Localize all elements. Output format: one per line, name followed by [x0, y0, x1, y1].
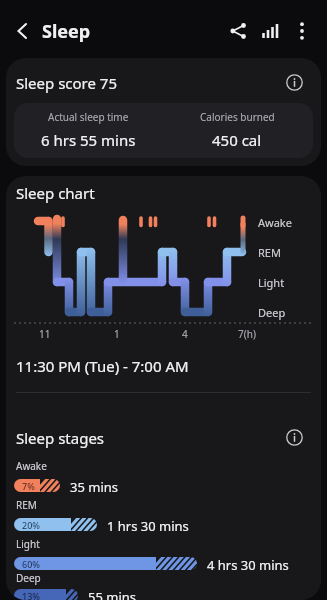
- button[interactable]: Sleep score 75: [6, 58, 321, 166]
- staticText: 20%: [22, 519, 40, 531]
- button[interactable]: 60%: [14, 557, 197, 570]
- staticText: 7%: [22, 480, 35, 492]
- staticText: Sleep stages: [16, 428, 105, 448]
- staticText: Calories burned: [200, 110, 275, 124]
- staticText: Light: [16, 537, 40, 551]
- staticText: 13%: [22, 590, 40, 600]
- staticText: 7(h): [238, 327, 256, 341]
- staticText: Sleep: [42, 19, 91, 44]
- button[interactable]: 7%: [14, 479, 60, 492]
- staticText: Sleep chart: [16, 183, 95, 203]
- button[interactable]: [282, 70, 306, 94]
- staticText: 4 hrs 30 mins: [207, 556, 289, 574]
- staticText: 4: [182, 327, 188, 341]
- staticText: Deep: [16, 571, 41, 585]
- staticText: 450 cal: [212, 130, 262, 150]
- button[interactable]: [256, 17, 284, 45]
- staticText: Awake: [258, 215, 292, 230]
- staticText: 55 mins: [88, 588, 137, 600]
- staticText: Sleep score 75: [16, 73, 118, 93]
- staticText: Actual sleep time: [48, 110, 129, 124]
- staticText: 6 hrs 55 mins: [41, 130, 136, 150]
- staticText: 1 hrs 30 mins: [107, 517, 189, 535]
- staticText: Awake: [16, 459, 47, 473]
- staticText: 11: [39, 327, 51, 341]
- button[interactable]: [289, 17, 315, 45]
- staticText: 1: [114, 327, 120, 341]
- staticText: Deep: [258, 305, 286, 320]
- button[interactable]: 13%: [14, 589, 78, 600]
- button[interactable]: [224, 17, 252, 45]
- staticText: 60%: [22, 558, 40, 570]
- staticText: REM: [16, 498, 37, 512]
- staticText: 11:30 PM (Tue) - 7:00 AM (Wed): [16, 356, 216, 379]
- button[interactable]: [282, 425, 306, 449]
- staticText: REM: [258, 245, 281, 260]
- button[interactable]: [6, 17, 40, 45]
- button[interactable]: 20%: [14, 518, 97, 531]
- staticText: Light: [258, 275, 285, 290]
- staticText: 35 mins: [70, 478, 119, 496]
